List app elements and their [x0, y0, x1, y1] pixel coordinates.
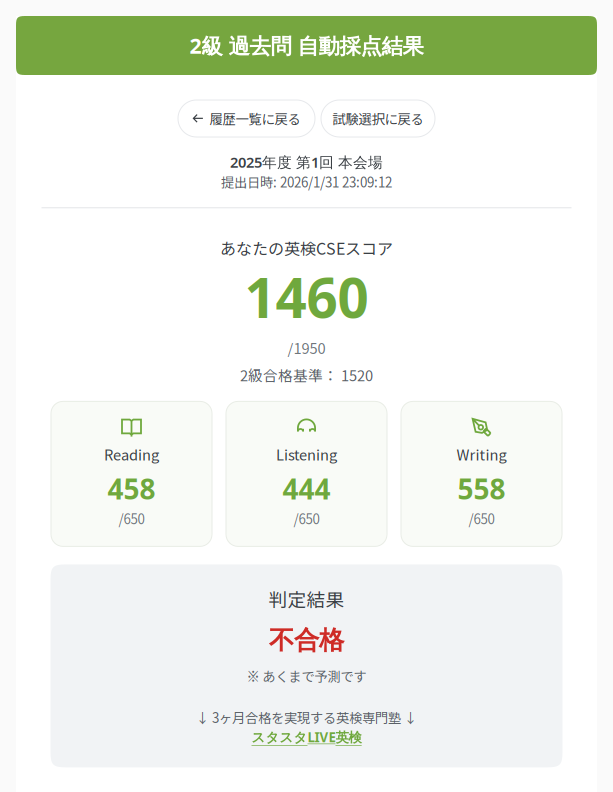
staticText: 458 [107, 470, 155, 508]
staticText: ※ あくまで予測です [246, 666, 366, 686]
staticText: 558 [457, 470, 505, 508]
staticText: 試験選択に戻る [332, 109, 423, 128]
staticText: 444 [282, 470, 330, 508]
staticText: 履歴一覧に戻る [209, 109, 300, 128]
staticText: Listening [276, 443, 337, 465]
staticText: 2級合格基準： 1520 [240, 364, 373, 385]
staticText: 不合格 [269, 624, 344, 656]
staticText: 2級 過去問 自動採点結果 [189, 31, 423, 60]
button[interactable]: 試験選択に戻る [321, 100, 435, 137]
staticText: スタスタLIVE英検 [251, 728, 361, 746]
button[interactable]: スタスタLIVE英検 [251, 728, 361, 746]
staticText: 2025年度 第1回 本会場 [230, 152, 383, 172]
button[interactable]: 履歴一覧に戻る [178, 100, 315, 137]
staticText: あなたの英検CSEスコア [220, 236, 393, 259]
staticText: /650 [118, 509, 144, 528]
staticText: Writing [456, 443, 506, 465]
staticText: Reading [104, 443, 159, 465]
staticText: 1460 [244, 259, 368, 334]
staticText: /1950 [287, 337, 325, 358]
staticText: 判定結果 [268, 585, 344, 612]
staticText: 提出日時: 2026/1/31 23:09:12 [221, 172, 392, 191]
staticText: /650 [293, 509, 319, 528]
staticText: /650 [468, 509, 494, 528]
staticText: ↓ 3ヶ月合格を実現する英検専門塾 ↓ [196, 708, 417, 727]
